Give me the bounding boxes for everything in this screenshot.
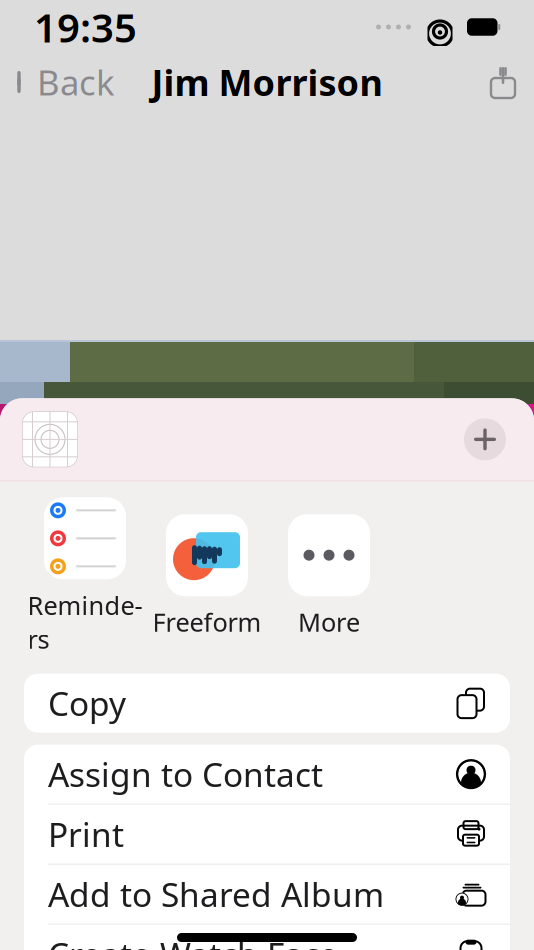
staticText: Create Watch Face <box>48 932 338 950</box>
staticText: Assign to Contact <box>48 752 323 796</box>
button[interactable]: Add to Shared Album <box>24 865 510 924</box>
staticText: Back <box>37 59 115 105</box>
button[interactable]: Freeform <box>146 510 268 643</box>
staticText: Freeform <box>152 605 261 639</box>
button[interactable]: Print <box>24 805 510 864</box>
button[interactable]: Share <box>472 58 534 106</box>
button[interactable]: More <box>268 510 390 643</box>
staticText: Add to Shared Album <box>48 872 384 916</box>
button[interactable]: Back <box>0 49 129 115</box>
staticText: 19:35 <box>34 0 137 53</box>
button[interactable]: Reminders <box>24 493 146 660</box>
button[interactable]: Copy <box>24 674 510 733</box>
button[interactable]: Assign to Contact <box>24 745 510 804</box>
button[interactable]: Create Watch Face <box>24 925 510 950</box>
staticText: Reminders <box>27 588 142 656</box>
staticText: Jim Morrison <box>151 58 382 106</box>
staticText: Copy <box>48 681 126 725</box>
staticText: Print <box>48 812 124 856</box>
button[interactable]: Close <box>458 412 512 466</box>
staticText: More <box>298 605 360 639</box>
